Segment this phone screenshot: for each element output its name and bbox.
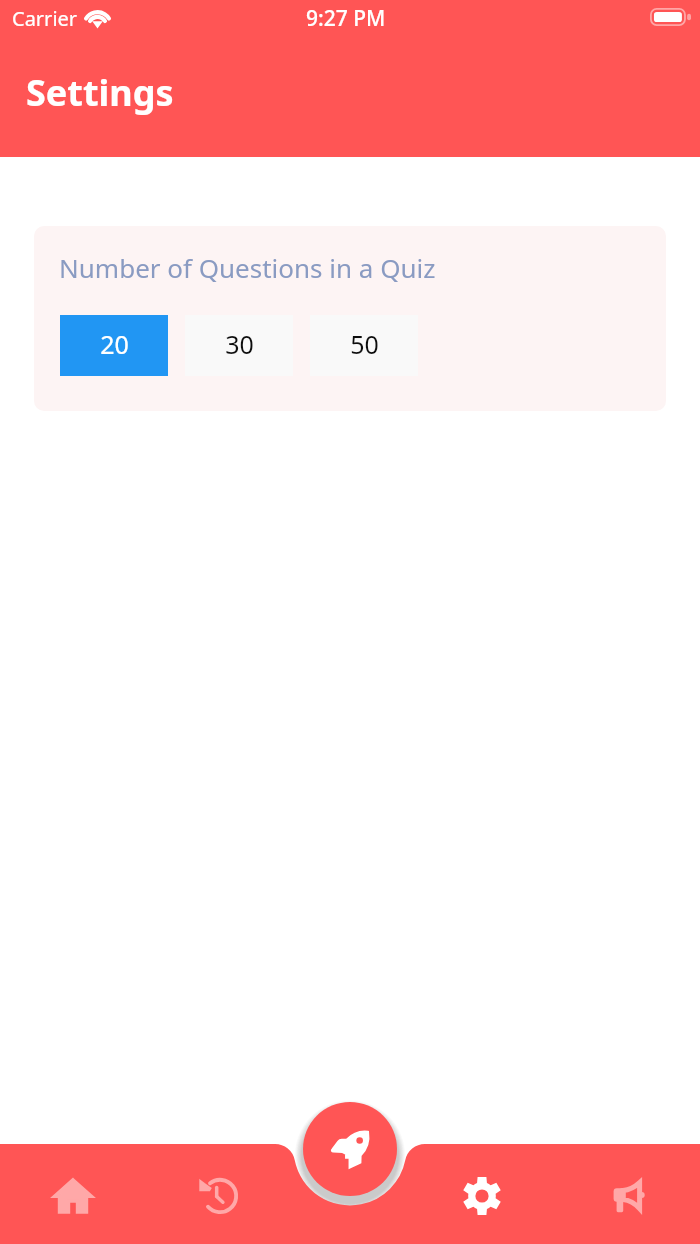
button[interactable]: 20 — [60, 315, 168, 376]
button[interactable]: 30 — [185, 315, 293, 376]
staticText: Carrier — [12, 5, 78, 32]
button[interactable]: 50 — [310, 315, 418, 376]
staticText: 50 — [350, 327, 379, 361]
button[interactable]: History — [160, 1150, 280, 1242]
button[interactable]: Home — [13, 1150, 133, 1242]
staticText: 9:27 PM — [306, 4, 386, 33]
staticText: 30 — [225, 327, 254, 361]
button[interactable]: Launch — [303, 1102, 397, 1196]
staticText: 20 — [100, 327, 129, 361]
button[interactable]: Announcements — [568, 1150, 688, 1242]
staticText: Number of Questions in a Quiz — [59, 250, 436, 285]
button[interactable]: Settings — [422, 1150, 542, 1242]
staticText: Settings — [26, 68, 174, 117]
